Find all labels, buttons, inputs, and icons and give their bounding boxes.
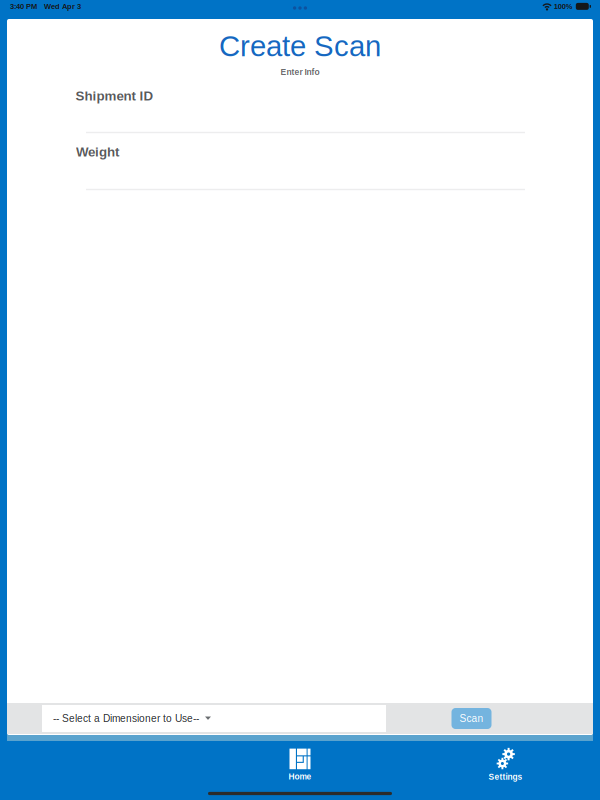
button[interactable]: Home — [252, 745, 348, 785]
staticText: 100% — [554, 2, 573, 10]
staticText: Create Scan — [219, 30, 381, 62]
staticText: Home — [288, 772, 311, 781]
staticText: Wed Apr 3 — [44, 2, 81, 10]
staticText: -- Select a Dimensioner to Use-- — [53, 713, 199, 724]
button[interactable]: -- Select a Dimensioner to Use-- — [42, 705, 386, 732]
button[interactable]: Scan — [451, 708, 491, 729]
button[interactable]: Settings — [457, 745, 553, 785]
staticText: Shipment ID — [75, 89, 153, 103]
staticText: Enter Info — [280, 67, 319, 77]
staticText: Settings — [488, 772, 522, 781]
staticText: Scan — [459, 713, 483, 724]
staticText: Weight — [76, 145, 119, 159]
staticText: 3:40 PM — [10, 2, 37, 10]
